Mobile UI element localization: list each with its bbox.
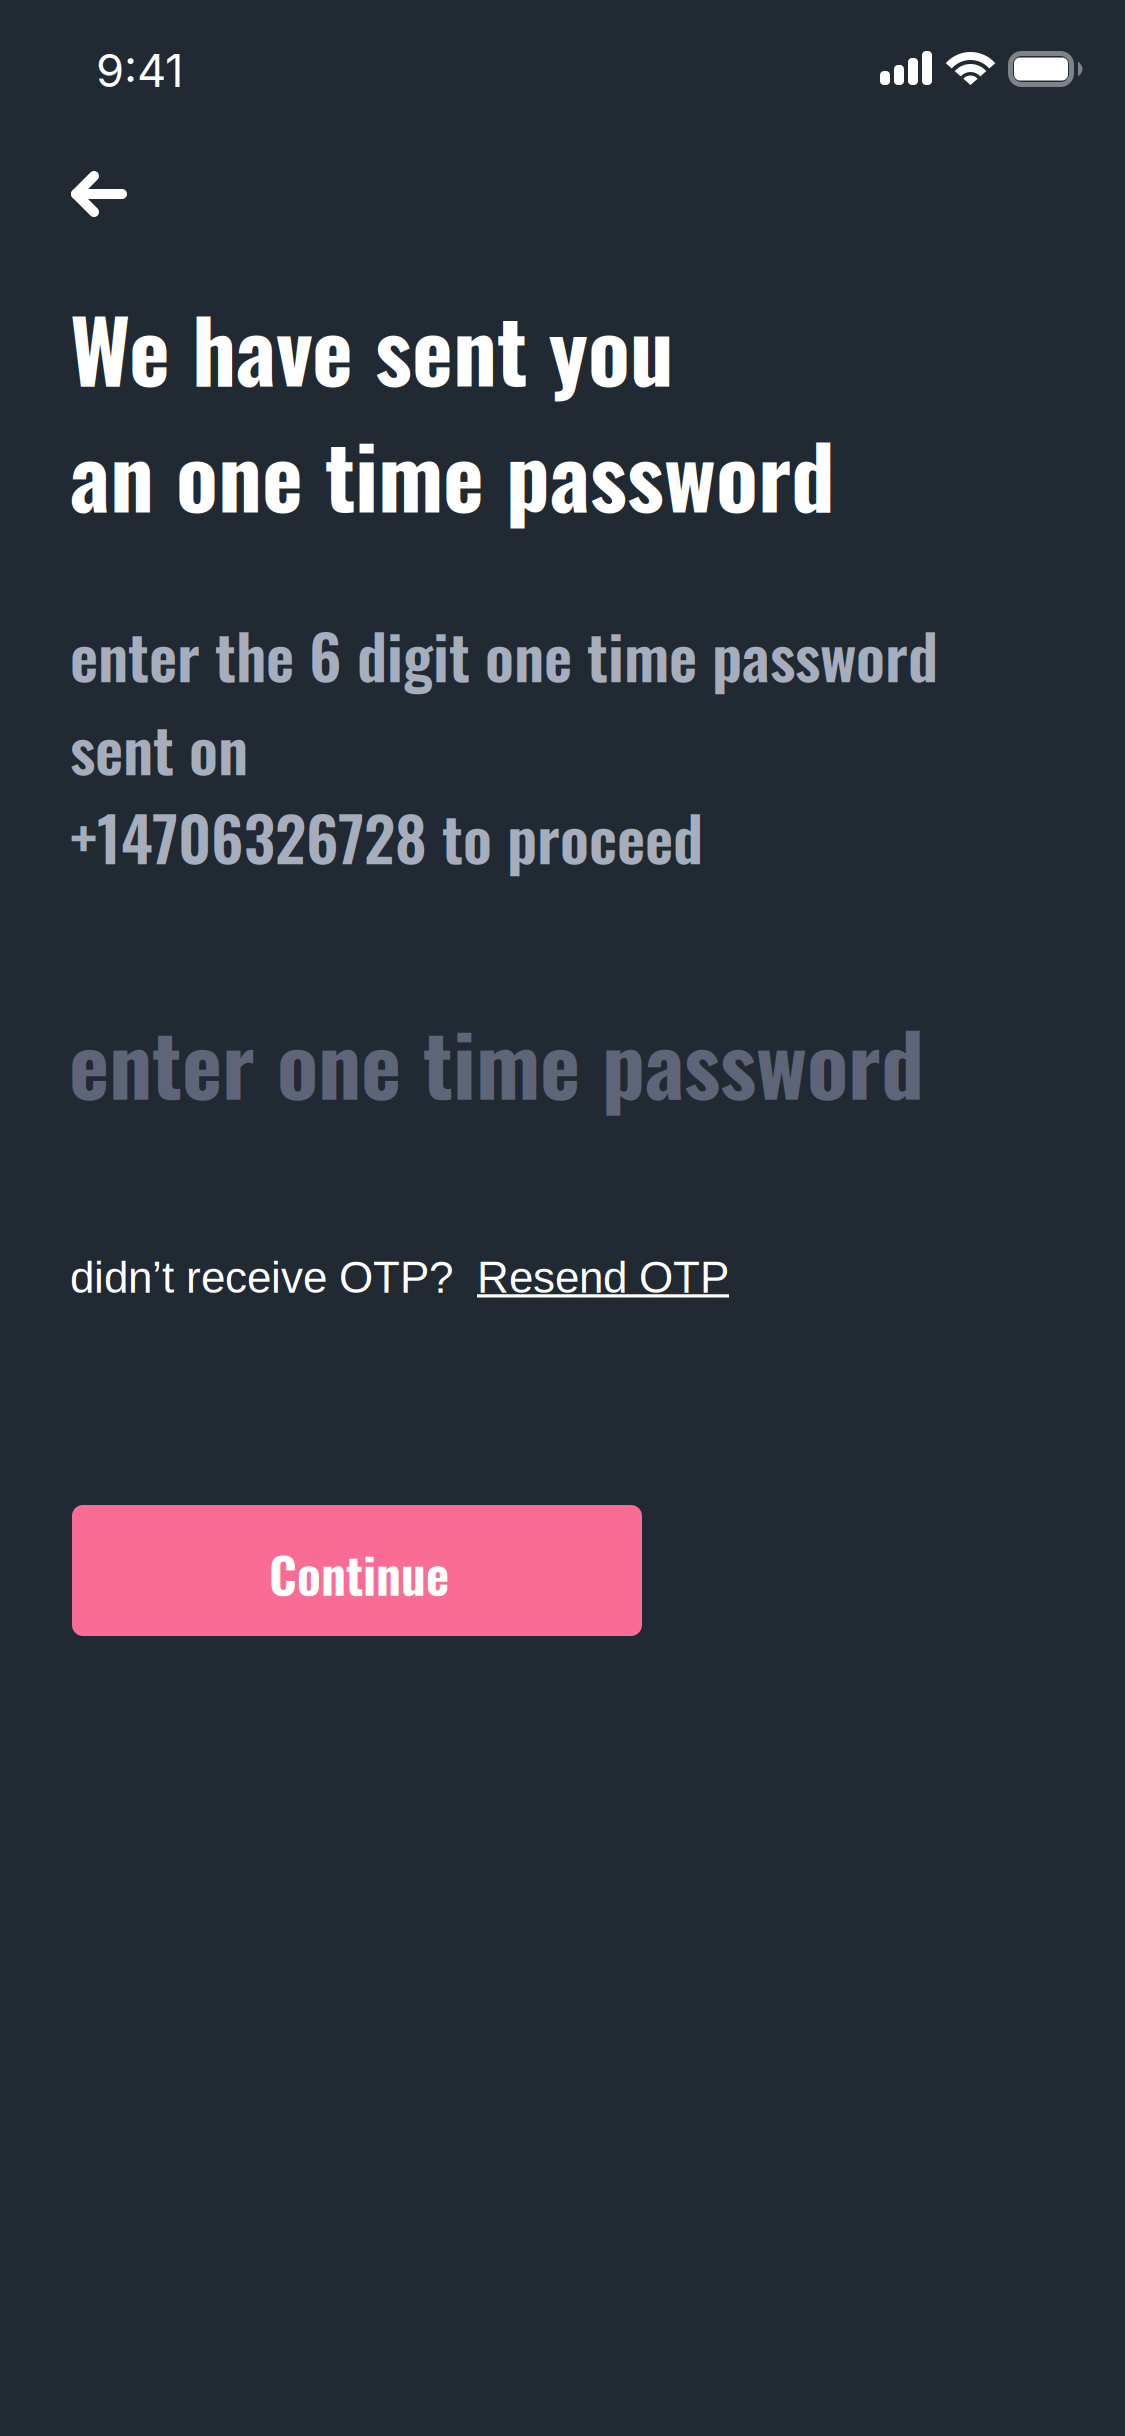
- button[interactable]: Back: [0, 147, 169, 241]
- staticText: 9:41: [96, 43, 183, 98]
- staticText: Continue: [269, 1537, 449, 1610]
- staticText: sent on: [70, 702, 248, 793]
- staticText: We have sent you: [70, 283, 674, 411]
- staticText: didn’t receive OTP?: [70, 1253, 477, 1302]
- button[interactable]: Continue: [72, 1505, 642, 1636]
- button[interactable]: Resend OTP: [477, 1253, 729, 1302]
- staticText: +14706326728 to proceed: [70, 791, 703, 882]
- staticText: an one time password: [70, 409, 835, 537]
- staticText: enter the 6 digit one time password: [70, 609, 938, 700]
- staticText: Resend OTP: [477, 1253, 729, 1302]
- staticText: enter one time password: [69, 998, 924, 1124]
